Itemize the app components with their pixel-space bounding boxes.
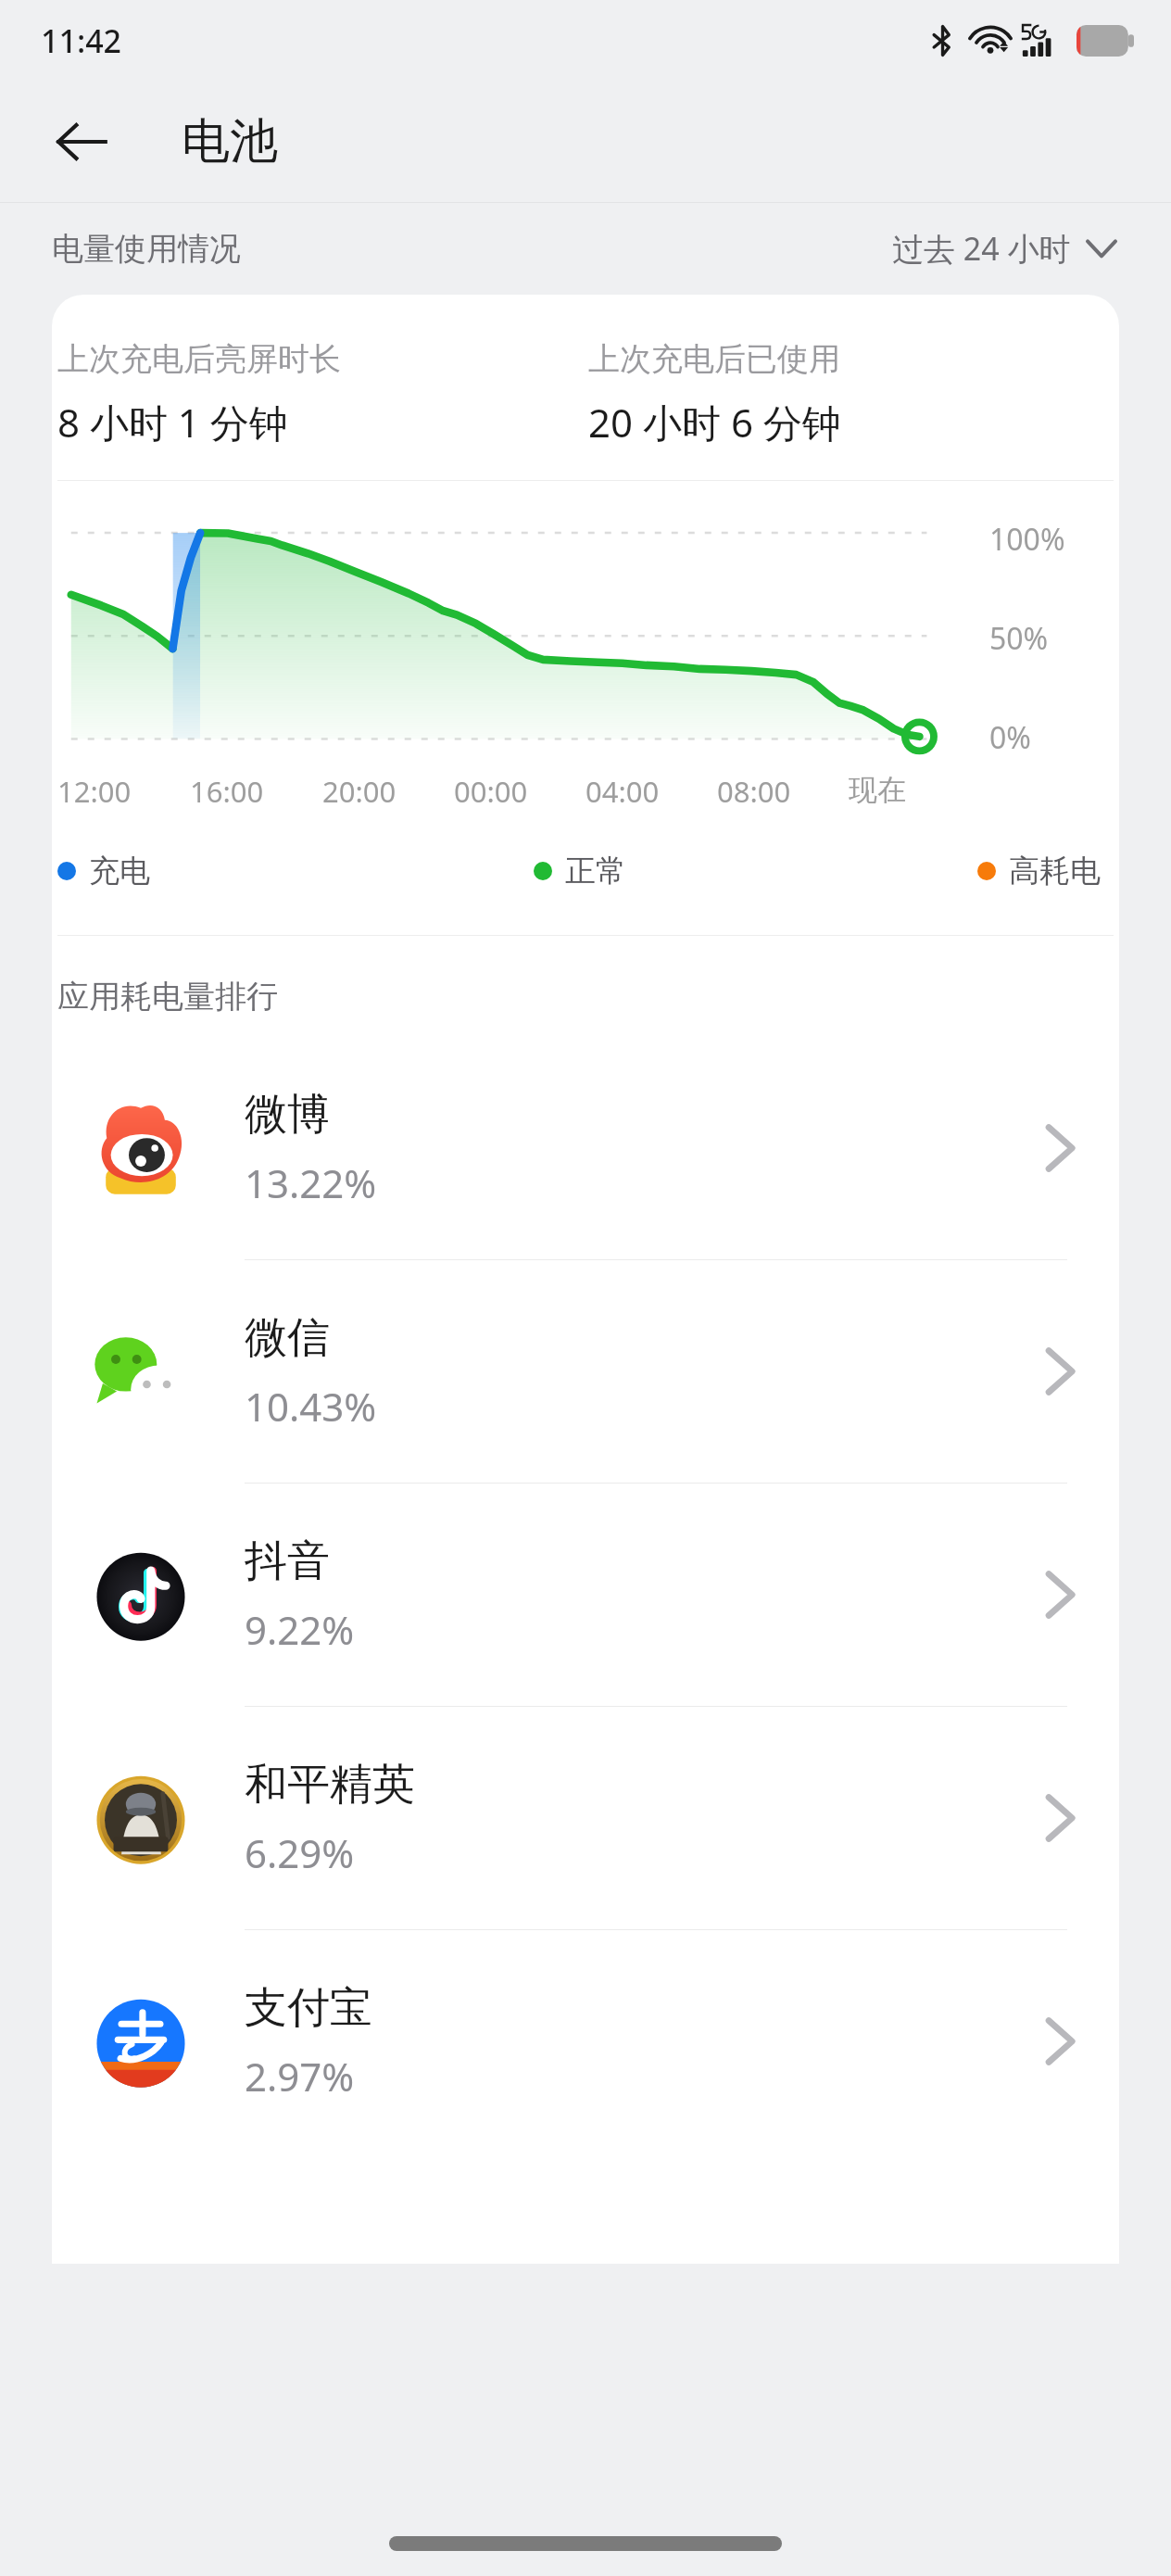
button[interactable]: 微博 xyxy=(52,1037,1119,1260)
staticText: 抖音 xyxy=(245,1534,330,1588)
staticText: 微信 xyxy=(245,1311,330,1365)
staticText: 过去 24 小时 xyxy=(892,227,1071,270)
button[interactable]: 和平精英 xyxy=(52,1707,1119,1930)
button[interactable]: Back xyxy=(37,97,126,186)
staticText: 100% xyxy=(989,519,1065,560)
staticText: 正常 xyxy=(565,852,626,890)
staticText: 12:00 xyxy=(57,772,132,811)
staticText: 上次充电后已使用 xyxy=(588,339,840,379)
staticText: 充电 xyxy=(89,852,150,890)
staticText: 上次充电后亮屏时长 xyxy=(57,339,341,379)
staticText: 应用耗电量排行 xyxy=(57,977,278,1017)
staticText: 10.43% xyxy=(245,1380,377,1433)
button[interactable]: 微信 xyxy=(52,1260,1119,1484)
staticText: 20 小时 6 分钟 xyxy=(588,396,841,448)
staticText: 2.97% xyxy=(245,2050,355,2102)
staticText: 6.29% xyxy=(245,1826,355,1879)
staticText: 16:00 xyxy=(190,772,264,811)
staticText: 电量使用情况 xyxy=(52,229,241,269)
staticText: 20:00 xyxy=(322,772,397,811)
staticText: 高耗电 xyxy=(1009,852,1101,890)
staticText: 8 小时 1 分钟 xyxy=(57,396,288,448)
staticText: 支付宝 xyxy=(245,1981,372,2035)
staticText: 0% xyxy=(989,717,1031,758)
staticText: 电池 xyxy=(182,111,278,172)
button[interactable]: 抖音 xyxy=(52,1484,1119,1707)
staticText: 00:00 xyxy=(454,772,528,811)
staticText: 08:00 xyxy=(717,772,791,811)
staticText: 9.22% xyxy=(245,1603,355,1656)
staticText: 微博 xyxy=(245,1088,330,1142)
staticText: 13.22% xyxy=(245,1156,377,1209)
staticText: 现在 xyxy=(849,772,906,808)
button[interactable]: 支付宝 xyxy=(52,1930,1119,2153)
staticText: 和平精英 xyxy=(245,1758,415,1812)
staticText: 50% xyxy=(989,618,1049,659)
staticText: 11:42 xyxy=(41,19,122,62)
button[interactable]: 过去 24 小时 xyxy=(888,221,1119,275)
staticText: 04:00 xyxy=(585,772,660,811)
